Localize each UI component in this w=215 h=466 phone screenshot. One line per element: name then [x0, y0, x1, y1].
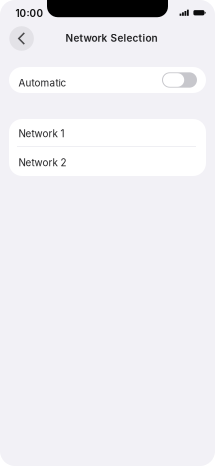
staticText: Network 1 — [18, 128, 64, 139]
staticText: Network Selection — [65, 32, 157, 44]
button[interactable]: Network 2 — [9, 147, 206, 176]
staticText: Network 2 — [18, 157, 66, 169]
staticText: Automatic — [18, 77, 66, 89]
staticText: 10:00 — [15, 7, 43, 19]
button[interactable]: Network 1 — [9, 119, 206, 146]
button[interactable]: Automatic — [162, 72, 197, 88]
button[interactable]: Back — [9, 26, 34, 51]
